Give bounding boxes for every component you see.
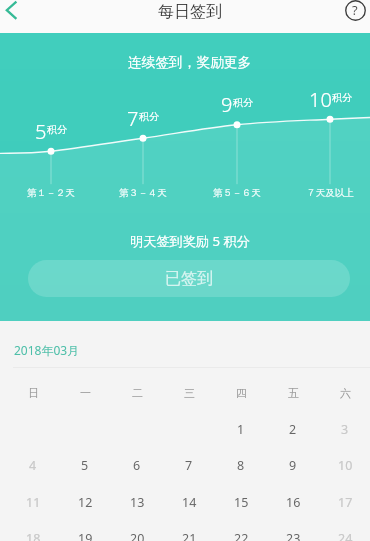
staticText: 第５－６天	[213, 187, 261, 199]
button[interactable]: Help	[339, 0, 370, 26]
staticText: 13	[130, 494, 145, 511]
staticText: 3	[341, 421, 349, 438]
staticText: 三	[184, 386, 195, 400]
button[interactable]: 23	[267, 520, 319, 541]
staticText: 9	[289, 457, 297, 474]
staticText: 日	[28, 386, 39, 400]
button[interactable]: 22	[215, 520, 267, 541]
button[interactable]: 6	[111, 447, 163, 483]
staticText: 21	[182, 530, 197, 541]
staticText: 五	[288, 386, 299, 400]
staticText: 一	[80, 386, 91, 400]
staticText: ７天及以上	[306, 187, 354, 199]
staticText: 6	[133, 457, 141, 474]
staticText: 8	[237, 457, 245, 474]
button[interactable]: 12	[59, 484, 111, 520]
staticText: 15	[234, 494, 249, 511]
button[interactable]: 24	[319, 520, 370, 541]
button[interactable]: 13	[111, 484, 163, 520]
button[interactable]: 20	[111, 520, 163, 541]
button[interactable]: 3	[319, 411, 370, 447]
button[interactable]: 19	[59, 520, 111, 541]
button[interactable]: 9	[267, 447, 319, 483]
staticText: 积分	[332, 91, 352, 104]
button[interactable]: 11	[7, 484, 59, 520]
button[interactable]: 17	[319, 484, 370, 520]
staticText: 20	[130, 530, 145, 541]
staticText: 已签到	[165, 269, 213, 289]
staticText: 连续签到，奖励更多	[128, 54, 252, 71]
staticText: 5	[81, 457, 89, 474]
staticText: 16	[286, 494, 301, 511]
staticText: 24	[338, 530, 353, 541]
staticText: 1	[237, 421, 245, 438]
button[interactable]: 7	[163, 447, 215, 483]
button[interactable]: 8	[215, 447, 267, 483]
staticText: 积分	[139, 110, 159, 123]
button[interactable]: 16	[267, 484, 319, 520]
staticText: 明天签到奖励 5 积分	[130, 232, 250, 250]
staticText: 22	[234, 530, 249, 541]
button[interactable]: 10	[319, 447, 370, 483]
staticText: 10	[338, 457, 353, 474]
button[interactable]: 15	[215, 484, 267, 520]
staticText: 二	[132, 386, 143, 400]
button[interactable]: 1	[215, 411, 267, 447]
staticText: 11	[26, 494, 41, 511]
button[interactable]: 已签到	[28, 260, 350, 297]
staticText: 19	[78, 530, 93, 541]
staticText: 14	[182, 494, 197, 511]
staticText: 10	[309, 86, 332, 113]
button[interactable]: 5	[59, 447, 111, 483]
staticText: 9	[221, 91, 233, 118]
staticText: ?	[352, 1, 358, 19]
staticText: 第１－２天	[27, 187, 75, 199]
staticText: 5	[35, 118, 47, 145]
staticText: 18	[26, 530, 41, 541]
staticText: 2018年03月	[14, 342, 80, 358]
button[interactable]: 18	[7, 520, 59, 541]
staticText: 17	[338, 494, 353, 511]
staticText: 六	[340, 386, 351, 400]
button[interactable]: Back	[0, 0, 32, 32]
button[interactable]: 21	[163, 520, 215, 541]
staticText: 积分	[233, 96, 253, 109]
staticText: 4	[29, 457, 37, 474]
staticText: 积分	[47, 123, 67, 136]
staticText: 第３－４天	[119, 187, 167, 199]
staticText: 四	[236, 386, 247, 400]
button[interactable]: 14	[163, 484, 215, 520]
staticText: 12	[78, 494, 93, 511]
staticText: 7	[127, 105, 139, 132]
staticText: 2	[289, 421, 297, 438]
staticText: 每日签到	[158, 2, 222, 22]
staticText: 23	[286, 530, 301, 541]
staticText: 7	[185, 457, 193, 474]
button[interactable]: 4	[7, 447, 59, 483]
button[interactable]: 2	[267, 411, 319, 447]
